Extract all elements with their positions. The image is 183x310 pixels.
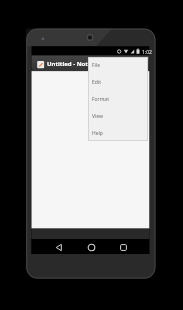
button[interactable]: Edit [88, 74, 148, 91]
button[interactable]: File [88, 57, 148, 74]
staticText: Help [92, 130, 103, 137]
staticText: Edit [92, 79, 101, 86]
button[interactable]: View [88, 108, 148, 125]
staticText: Format [92, 96, 109, 103]
staticText: Untitled - Not [47, 60, 88, 68]
staticText: View [92, 113, 103, 120]
button[interactable] [52, 241, 65, 254]
staticText: 1:02 [142, 49, 152, 56]
button[interactable] [117, 241, 130, 254]
button[interactable]: Help [88, 125, 148, 141]
button[interactable]: Format [88, 91, 148, 108]
staticText: File [92, 62, 100, 69]
button[interactable] [85, 241, 98, 254]
